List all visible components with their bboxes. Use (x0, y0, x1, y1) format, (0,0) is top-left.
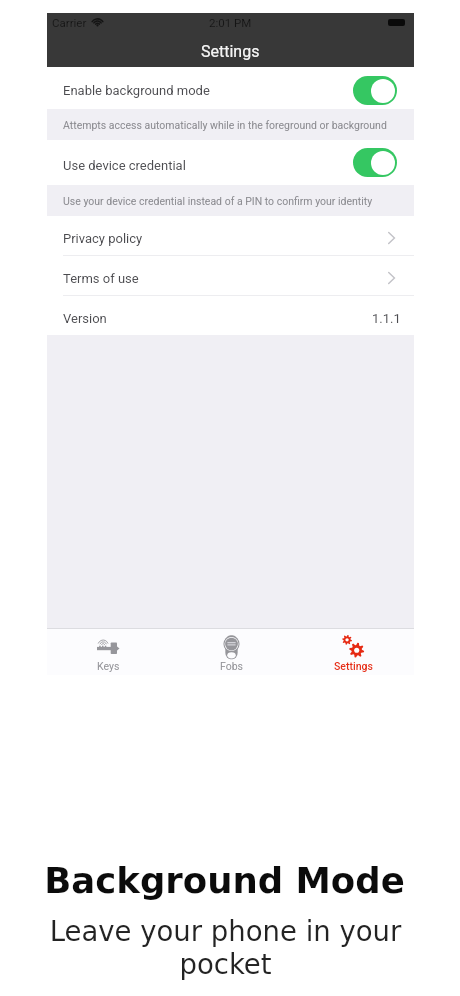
staticText: Use your device credential instead of a … (63, 195, 373, 207)
button[interactable]: Use device credential (47, 140, 414, 185)
button[interactable]: Terms of use (47, 256, 414, 296)
button[interactable]: Settings (292, 629, 414, 675)
staticText: Carrier (52, 16, 87, 29)
staticText: Attempts access automatically while in t… (63, 119, 387, 131)
staticText: 2:01 PM (209, 16, 252, 29)
staticText: Keys (97, 660, 120, 672)
staticText: Fobs (220, 660, 243, 672)
staticText: Settings (334, 660, 373, 672)
staticText: 1.1.1 (372, 311, 401, 326)
staticText: Version (63, 311, 107, 326)
staticText: Terms of use (63, 271, 139, 286)
button[interactable]: Privacy policy (47, 216, 414, 256)
button[interactable]: Version (47, 296, 414, 335)
staticText: Enable background mode (63, 83, 210, 98)
button[interactable]: Fobs (170, 629, 292, 675)
button[interactable]: Keys (47, 629, 170, 675)
button[interactable]: Enable background mode (47, 67, 414, 109)
staticText: Use device credential (63, 158, 186, 173)
staticText: Background Mode (34, 860, 415, 901)
staticText: Settings (201, 42, 260, 61)
staticText: Leave your phone in your pocket (35, 915, 416, 981)
staticText: Privacy policy (63, 231, 143, 246)
